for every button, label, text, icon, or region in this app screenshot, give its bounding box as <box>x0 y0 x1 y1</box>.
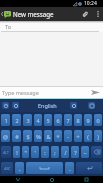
button[interactable]: Search <box>70 102 77 109</box>
staticText: ( <box>87 133 89 140</box>
staticText: Type message <box>2 89 39 96</box>
button[interactable]: 1 <box>1 114 10 126</box>
staticText: & <box>46 133 51 140</box>
staticText: % <box>36 133 41 140</box>
button[interactable]: 2 <box>12 114 21 126</box>
button[interactable]: $ <box>23 130 32 142</box>
staticText: * <box>56 133 60 140</box>
button[interactable]: Attach <box>79 7 92 21</box>
button[interactable]: % <box>34 130 42 142</box>
button[interactable]: ~ <box>81 146 89 158</box>
staticText: ? <box>74 149 77 156</box>
button[interactable]: 9 <box>84 114 92 126</box>
button[interactable]: Navigate up <box>0 7 11 21</box>
staticText: @ <box>3 133 8 140</box>
staticText: - <box>67 133 69 140</box>
button[interactable]: 0 <box>94 114 102 126</box>
staticText: . <box>69 165 71 172</box>
staticText: 0 <box>96 117 100 124</box>
button[interactable]: ABC <box>1 162 13 174</box>
button[interactable]: Emoji <box>2 102 9 109</box>
button[interactable]: ( <box>84 130 92 142</box>
staticText: 7 <box>66 117 70 124</box>
staticText: ; <box>54 149 56 156</box>
button[interactable]: ? <box>71 146 79 158</box>
button[interactable]: ; <box>51 146 59 158</box>
staticText: # <box>15 133 19 140</box>
staticText: New message <box>13 10 54 18</box>
button[interactable]: ) <box>94 130 102 142</box>
button[interactable]: ALT <box>1 146 11 158</box>
button[interactable]: : <box>41 146 49 158</box>
staticText: $ <box>26 133 30 140</box>
staticText: 1 <box>4 117 8 124</box>
staticText: + <box>76 133 80 140</box>
button[interactable]: Type message <box>0 87 88 98</box>
button[interactable]: & <box>44 130 52 142</box>
button[interactable]: / <box>61 146 69 158</box>
button[interactable]: . <box>65 162 74 174</box>
button[interactable]: 8 <box>74 114 82 126</box>
staticText: 3 <box>26 117 30 124</box>
staticText: 8 <box>76 117 80 124</box>
staticText: , <box>19 165 21 172</box>
staticText: English <box>38 102 57 109</box>
button[interactable]: 4 <box>34 114 42 126</box>
button[interactable]: Home <box>35 176 69 183</box>
staticText: ' <box>34 149 36 156</box>
button[interactable]: Send <box>88 87 103 98</box>
button[interactable]: # <box>12 130 21 142</box>
button[interactable]: 3 <box>23 114 32 126</box>
staticText: : <box>44 149 46 156</box>
button[interactable]: + <box>74 130 82 142</box>
button[interactable]: , <box>15 162 24 174</box>
staticText: ) <box>97 133 99 140</box>
button[interactable]: * <box>54 130 62 142</box>
button[interactable]: Voice input <box>12 102 19 109</box>
staticText: ALT <box>3 150 9 154</box>
button[interactable]: 7 <box>64 114 72 126</box>
staticText: / <box>64 149 67 156</box>
button[interactable]: " <box>22 146 29 158</box>
button[interactable]: 5 <box>44 114 52 126</box>
staticText: ~ <box>83 149 87 156</box>
button[interactable]: @ <box>1 130 10 142</box>
button[interactable]: More options <box>92 7 103 21</box>
staticText: 5 <box>46 117 50 124</box>
staticText: " <box>24 149 27 156</box>
button[interactable]: Backspace <box>91 146 102 158</box>
staticText: 4 <box>36 117 40 124</box>
button[interactable]: To <box>0 21 103 31</box>
staticText: ABC <box>4 166 11 170</box>
staticText: 10:24 <box>84 0 97 7</box>
button[interactable]: Enter <box>76 162 102 174</box>
staticText: 2 <box>15 117 19 124</box>
staticText: 6 <box>56 117 60 124</box>
button[interactable]: Keyboard layout <box>88 102 95 109</box>
button[interactable]: - <box>64 130 72 142</box>
button[interactable]: Hide keyboard <box>0 176 35 183</box>
button[interactable]: Recent apps <box>69 176 103 183</box>
button[interactable]: Space <box>26 162 63 174</box>
staticText: ! <box>16 149 18 156</box>
staticText: To <box>5 23 12 30</box>
button[interactable]: 6 <box>54 114 62 126</box>
staticText: 9 <box>86 117 90 124</box>
button[interactable]: ! <box>13 146 20 158</box>
button[interactable]: ' <box>31 146 39 158</box>
